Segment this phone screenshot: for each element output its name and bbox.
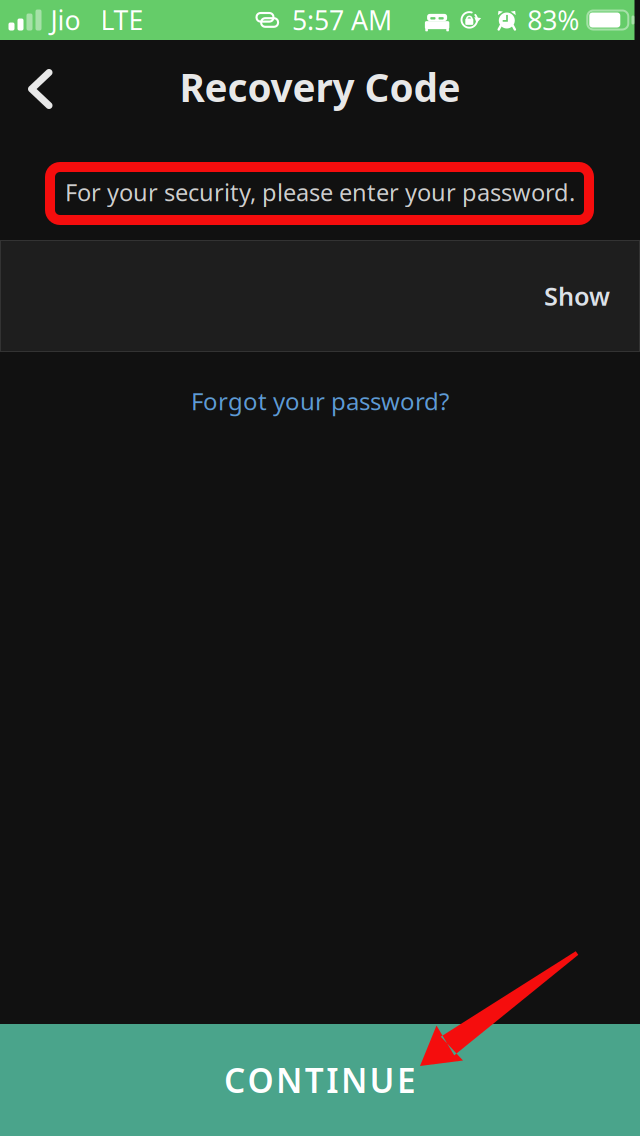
staticText: For your security, please enter your pas… (65, 176, 575, 208)
staticText: Recovery Code (179, 61, 460, 113)
staticText: Forgot your password? (191, 385, 449, 417)
staticText: LTE (100, 2, 143, 38)
button[interactable]: Back (0, 55, 81, 125)
button[interactable]: CONTINUE (0, 1024, 640, 1136)
button[interactable]: Show (544, 240, 640, 352)
button[interactable]: Forgot your password? (191, 386, 449, 416)
staticText: Jio (50, 2, 80, 38)
staticText: Show (544, 279, 610, 313)
staticText: CONTINUE (224, 1058, 416, 1102)
staticText: 83% (527, 2, 579, 38)
staticText: 5:57 AM (292, 2, 392, 38)
